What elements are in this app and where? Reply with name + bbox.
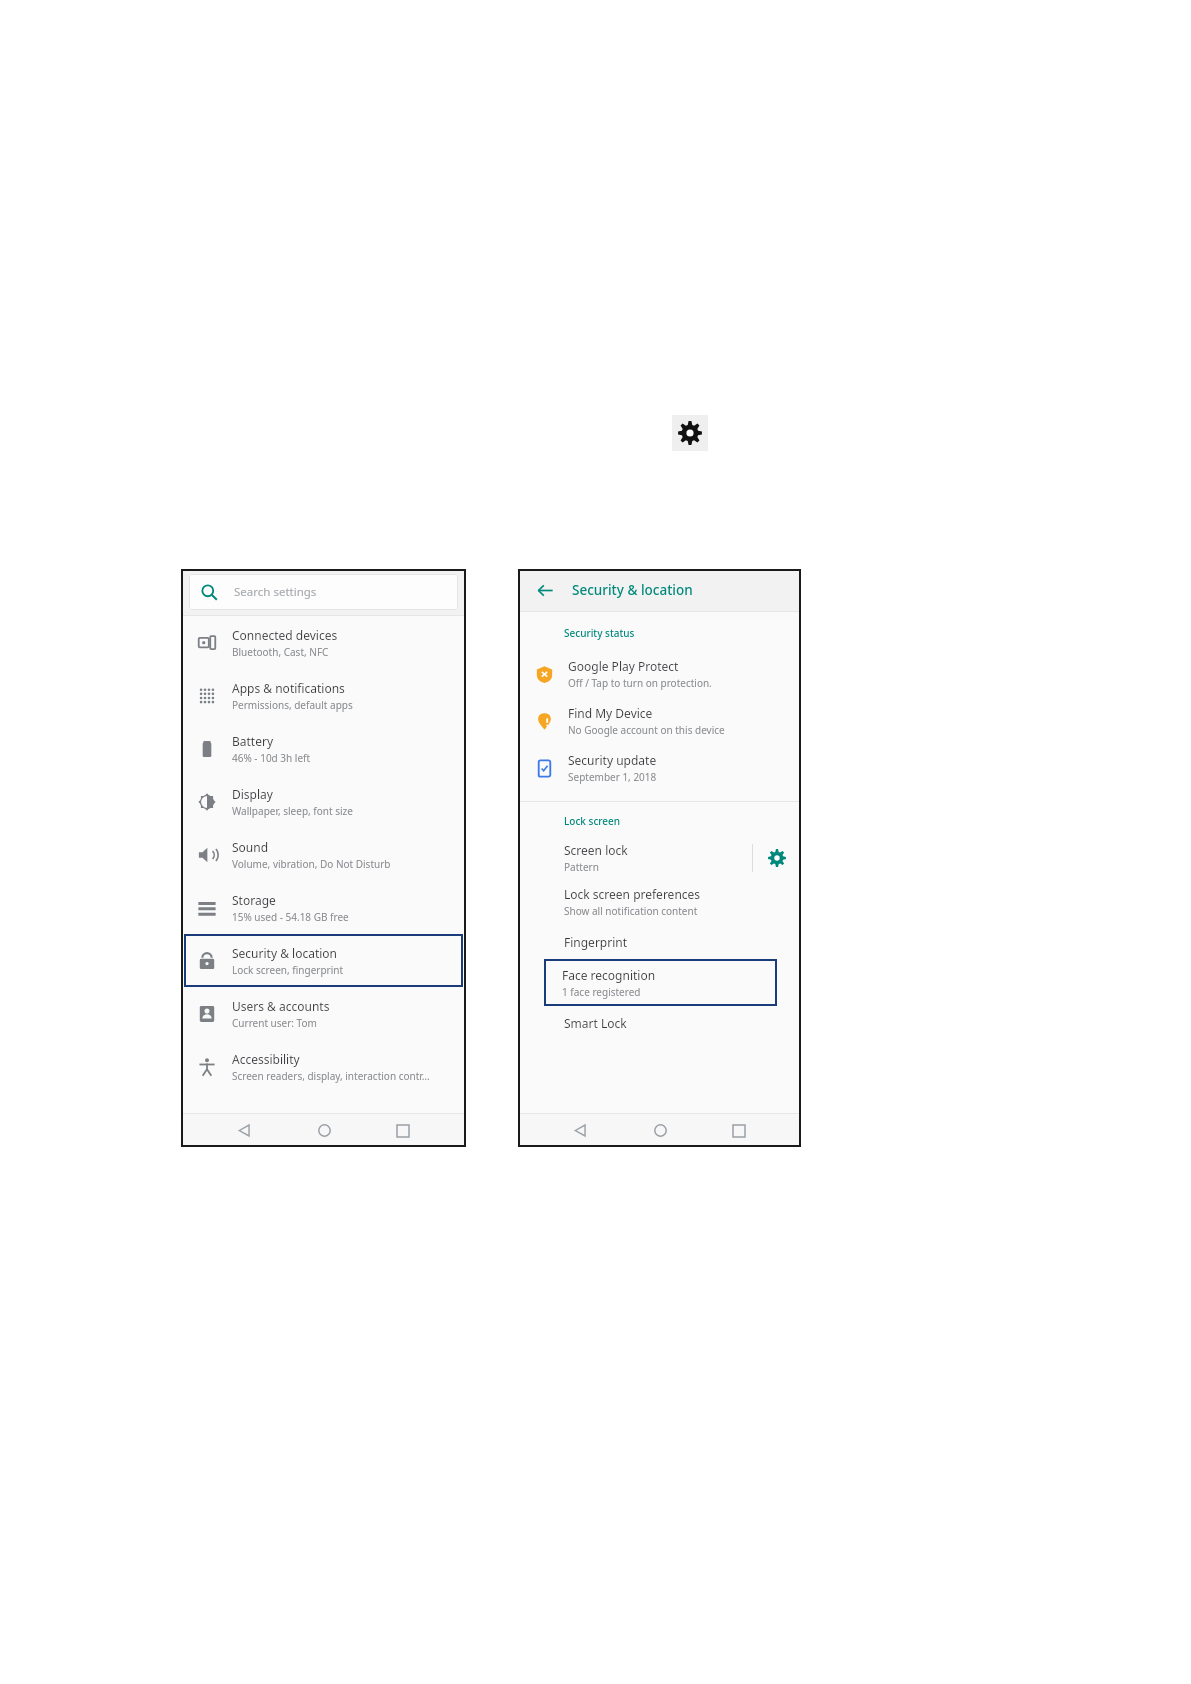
staticText: Pattern	[564, 860, 599, 874]
staticText: Apps & notifications	[232, 680, 345, 696]
staticText: Connected devices	[232, 627, 338, 643]
button[interactable]: Recent apps	[722, 1114, 756, 1147]
staticText: Smart Lock	[564, 1015, 627, 1031]
button[interactable]: Connected devices	[181, 616, 466, 669]
button[interactable]: Display	[181, 775, 466, 828]
button[interactable]: Home	[307, 1114, 341, 1147]
button[interactable]: Recent apps	[386, 1114, 420, 1147]
button[interactable]: Security & location	[184, 934, 463, 987]
staticText: Fingerprint	[564, 934, 628, 950]
button[interactable]: Screen lock settings	[753, 838, 801, 878]
button[interactable]: Accessibility	[181, 1040, 466, 1093]
button[interactable]: Screen lock	[518, 838, 801, 878]
staticText: Lock screen preferences	[564, 886, 701, 902]
staticText: September 1, 2018	[568, 770, 657, 784]
button[interactable]: Google Play Protect	[518, 650, 801, 697]
button[interactable]: Back	[532, 577, 558, 603]
staticText: Search settings	[234, 584, 317, 600]
staticText: Screen readers, display, interaction con…	[232, 1069, 430, 1083]
button[interactable]: Storage	[181, 881, 466, 934]
button[interactable]: Users & accounts	[181, 987, 466, 1040]
button[interactable]: Fingerprint	[518, 925, 801, 959]
button[interactable]: Apps & notifications	[181, 669, 466, 722]
staticText: Security & location	[572, 581, 693, 599]
button[interactable]: Sound	[181, 828, 466, 881]
button[interactable]: Settings	[672, 415, 708, 451]
staticText: Permissions, default apps	[232, 698, 353, 712]
staticText: Find My Device	[568, 705, 653, 721]
staticText: 46% - 10d 3h left	[232, 751, 311, 765]
staticText: Lock screen	[564, 814, 621, 828]
staticText: Screen lock	[564, 842, 628, 858]
staticText: Google Play Protect	[568, 658, 679, 674]
staticText: Storage	[232, 892, 276, 908]
staticText: Face recognition	[562, 967, 656, 983]
staticText: Battery	[232, 733, 274, 749]
staticText: Show all notification content	[564, 904, 698, 918]
staticText: Current user: Tom	[232, 1016, 317, 1030]
staticText: Wallpaper, sleep, font size	[232, 804, 353, 818]
staticText: Bluetooth, Cast, NFC	[232, 645, 329, 659]
staticText: Sound	[232, 839, 269, 855]
button[interactable]: Back	[227, 1114, 261, 1147]
staticText: Display	[232, 786, 273, 802]
staticText: No Google account on this device	[568, 723, 725, 737]
staticText: Security status	[564, 626, 635, 640]
button[interactable]: Security update	[518, 744, 801, 791]
button[interactable]: Face recognition	[544, 959, 777, 1006]
staticText: Security update	[568, 752, 657, 768]
button[interactable]: Back	[563, 1114, 597, 1147]
button[interactable]: Battery	[181, 722, 466, 775]
button[interactable]: Search settings	[189, 574, 458, 610]
staticText: Security & location	[232, 945, 338, 961]
button[interactable]: Smart Lock	[518, 1006, 801, 1040]
staticText: Lock screen, fingerprint	[232, 963, 344, 977]
staticText: Users & accounts	[232, 998, 330, 1014]
button[interactable]: Lock screen preferences	[518, 878, 801, 925]
button[interactable]: Home	[643, 1114, 677, 1147]
staticText: Volume, vibration, Do Not Disturb	[232, 857, 391, 871]
staticText: Off / Tap to turn on protection.	[568, 676, 712, 690]
button[interactable]: Find My Device	[518, 697, 801, 744]
staticText: 15% used - 54.18 GB free	[232, 910, 349, 924]
staticText: 1 face registered	[562, 985, 641, 999]
staticText: Accessibility	[232, 1051, 300, 1067]
